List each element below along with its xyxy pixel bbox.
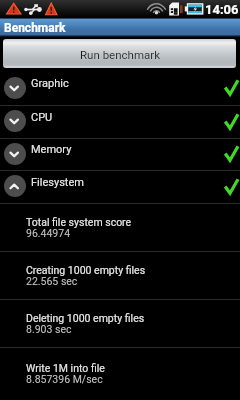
button[interactable]: Expand bbox=[0, 139, 240, 170]
staticText: Graphic bbox=[31, 77, 69, 90]
staticText: Total file system score bbox=[26, 216, 132, 228]
other: Expand bbox=[4, 77, 26, 99]
button[interactable]: Deleting 1000 empty files bbox=[0, 300, 240, 347]
button[interactable]: Expand bbox=[0, 106, 240, 138]
staticText: 22.565 sec bbox=[26, 275, 78, 287]
staticText: Creating 1000 empty files bbox=[26, 264, 146, 276]
staticText: Filesystem bbox=[31, 176, 84, 189]
staticText: 8.857396 M/sec bbox=[26, 373, 103, 385]
staticText: Memory bbox=[31, 143, 72, 156]
staticText: Deleting 1000 empty files bbox=[26, 312, 145, 324]
staticText: CPU bbox=[31, 111, 53, 124]
button[interactable]: Expand bbox=[0, 72, 240, 105]
staticText: Run benchmark bbox=[80, 48, 160, 61]
button[interactable]: Total file system score bbox=[0, 204, 240, 251]
button[interactable]: Write 1M into file bbox=[0, 348, 240, 400]
button[interactable]: Run benchmark bbox=[3, 39, 236, 68]
staticText: Write 1M into file bbox=[26, 362, 105, 374]
button[interactable]: Creating 1000 empty files bbox=[0, 252, 240, 299]
other: Collapse bbox=[4, 175, 26, 197]
other: Expand bbox=[4, 143, 26, 165]
staticText: 96.44974 bbox=[26, 227, 71, 239]
button[interactable]: Collapse bbox=[0, 171, 240, 203]
other: Expand bbox=[4, 110, 26, 132]
staticText: 14:06 bbox=[205, 2, 239, 17]
staticText: 8.903 sec bbox=[26, 323, 72, 335]
staticText: Benchmark bbox=[4, 21, 66, 35]
